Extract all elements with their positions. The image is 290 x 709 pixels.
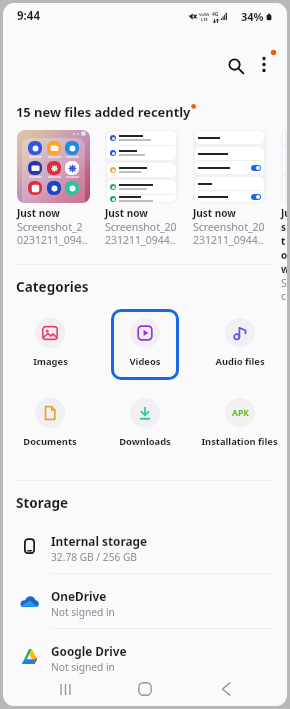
button[interactable]: APK <box>192 389 287 460</box>
staticText: Audio files <box>215 355 265 368</box>
staticText: Images <box>33 355 68 368</box>
button[interactable]: Google Drive <box>3 629 287 683</box>
staticText: 15 new files added recently <box>16 103 191 121</box>
button[interactable]: Videos <box>97 309 192 380</box>
button[interactable]: Documents <box>3 389 97 460</box>
button[interactable]: Just now <box>281 130 287 303</box>
staticText: Not signed in <box>51 605 115 619</box>
staticText: Documents <box>23 435 77 448</box>
staticText: Videos <box>129 355 161 368</box>
button[interactable]: Recents <box>46 672 84 706</box>
staticText: Not signed in <box>51 660 115 674</box>
staticText: Just now <box>105 206 148 220</box>
staticText: Installation files <box>201 435 278 448</box>
button[interactable]: Home <box>126 672 164 706</box>
staticText: Storage <box>16 494 69 512</box>
staticText: 34% <box>241 9 264 24</box>
staticText: APK <box>232 407 249 419</box>
staticText: Just now <box>17 206 60 220</box>
staticText: Screenshot_20 231211_0944... <box>281 276 287 303</box>
button[interactable]: Internal storage <box>3 519 287 574</box>
staticText: 32.78 GB / 256 GB <box>51 550 137 564</box>
button[interactable]: More options <box>248 44 284 80</box>
staticText: Google Drive <box>51 643 127 659</box>
button[interactable]: Just now <box>17 130 90 247</box>
button[interactable]: Back <box>207 672 245 706</box>
staticText: Internal storage <box>51 533 148 549</box>
button[interactable]: Search <box>218 48 254 84</box>
button[interactable]: OneDrive <box>3 574 287 629</box>
button[interactable]: Images <box>3 309 97 380</box>
staticText: Downloads <box>119 435 171 448</box>
button[interactable]: Just now <box>105 130 178 247</box>
staticText: OneDrive <box>51 588 107 604</box>
staticText: Categories <box>16 278 89 296</box>
staticText: Just now <box>193 206 236 220</box>
staticText: Screenshot_2 0231211_094... <box>17 220 90 247</box>
staticText: VoWi <box>199 12 210 17</box>
staticText: Just now <box>281 206 287 276</box>
staticText: Screenshot_20 231211_0944... <box>193 220 266 247</box>
button[interactable]: Just now <box>193 130 266 247</box>
staticText: 4G <box>212 11 219 18</box>
button[interactable]: Downloads <box>97 389 192 460</box>
button[interactable]: Audio files <box>192 309 287 380</box>
staticText: 9:44 <box>17 8 40 24</box>
staticText: LTE <box>201 17 208 22</box>
staticText: Screenshot_20 231211_0944... <box>105 220 178 247</box>
